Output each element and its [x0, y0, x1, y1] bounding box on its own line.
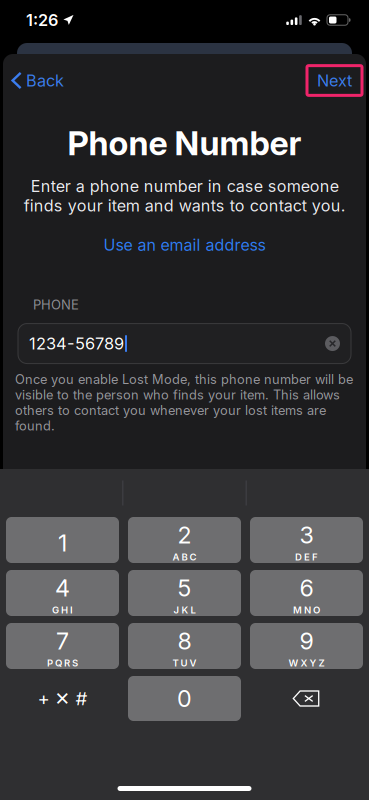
staticText: 1234-56789 [29, 334, 124, 353]
staticText: 1 [58, 529, 67, 557]
staticText: Use an email address [103, 235, 265, 255]
staticText: Next [317, 71, 352, 90]
button[interactable]: 4 [6, 570, 119, 616]
button[interactable]: Back [3, 64, 64, 97]
staticText: 4 [55, 574, 70, 602]
staticText: 7 [56, 627, 69, 655]
button[interactable]: 1 [6, 517, 119, 563]
staticText: 1:26 [26, 10, 58, 30]
staticText: 8 [177, 627, 191, 655]
staticText: Phone Number [67, 123, 301, 163]
staticText: P Q R S [47, 657, 78, 669]
staticText: 6 [299, 574, 313, 602]
button[interactable]: 6 [250, 570, 363, 616]
button[interactable]: 0 [128, 676, 241, 721]
staticText: Enter a phone number in case someone fin… [23, 176, 345, 215]
staticText: Back [26, 71, 64, 90]
staticText: 2 [177, 521, 191, 549]
staticText: 0 [177, 684, 192, 713]
staticText: Once you enable Lost Mode, this phone nu… [15, 371, 353, 433]
staticText: PHONE [33, 297, 79, 312]
staticText: 9 [299, 627, 313, 655]
staticText: W X Y Z [288, 657, 324, 669]
staticText: 5 [177, 574, 191, 602]
staticText: G H I [52, 604, 73, 616]
button[interactable]: 7 [6, 623, 119, 669]
button[interactable]: 5 [128, 570, 241, 616]
button[interactable]: Symbols [6, 676, 119, 721]
button[interactable]: Next [307, 66, 362, 95]
staticText: + ✕ # [37, 687, 87, 710]
button[interactable]: Delete [250, 676, 363, 721]
staticText: T U V [172, 657, 196, 669]
button[interactable]: 3 [250, 517, 363, 563]
staticText: J K L [173, 604, 195, 616]
staticText: 3 [299, 521, 313, 549]
button[interactable]: 2 [128, 517, 241, 563]
staticText: A B C [172, 551, 196, 563]
staticText: D E F [295, 551, 318, 563]
staticText: M N O [293, 604, 320, 616]
button[interactable]: Use an email address [93, 215, 275, 258]
button[interactable]: 8 [128, 623, 241, 669]
button[interactable]: 9 [250, 623, 363, 669]
